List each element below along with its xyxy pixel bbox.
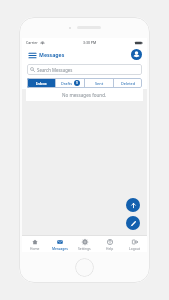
staticText: Home [30, 246, 40, 250]
staticText: Help [106, 246, 114, 250]
staticText: Settings [78, 246, 91, 250]
staticText: Logout [129, 246, 140, 250]
staticText: No messages found. [62, 92, 107, 98]
button[interactable]: Home [22, 236, 47, 252]
button[interactable]: Drafts [56, 78, 84, 88]
button[interactable]: Help [97, 236, 122, 252]
button[interactable]: Open navigation menu [27, 50, 37, 60]
button[interactable]: Sent [85, 78, 113, 88]
staticText: Drafts [61, 81, 73, 86]
staticText: Search Messages [37, 67, 73, 73]
staticText: 3:30 PM [83, 40, 97, 45]
button[interactable]: Settings [72, 236, 97, 252]
staticText: Messages [52, 246, 68, 250]
button[interactable]: Scroll to top [126, 198, 140, 212]
staticText: 1 [76, 81, 78, 85]
staticText: Inbox [36, 81, 47, 86]
button[interactable]: Deleted [114, 78, 142, 88]
button[interactable]: Search Messages [27, 64, 142, 75]
button[interactable]: Profile account [131, 49, 142, 60]
button[interactable]: Compose new message [126, 216, 140, 230]
button[interactable]: Messages [47, 236, 72, 252]
button[interactable]: Inbox [27, 78, 55, 88]
staticText: Messages [39, 51, 65, 58]
staticText: Sent [95, 81, 104, 86]
staticText: Carrier [26, 40, 38, 45]
button[interactable]: Logout [122, 236, 147, 252]
staticText: Deleted [121, 81, 136, 86]
